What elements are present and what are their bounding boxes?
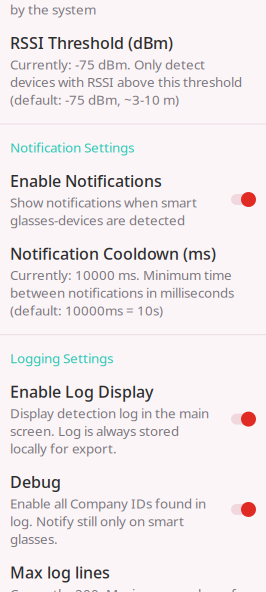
button[interactable]: Debug (0, 464, 266, 555)
button[interactable]: Max log lines (0, 555, 266, 592)
staticText: RSSI Threshold (dBm) (10, 32, 173, 53)
staticText: Show notifications when smart glasses-de… (10, 193, 197, 229)
button[interactable]: Enable Log Display (0, 374, 266, 464)
staticText: Notification Cooldown (ms) (10, 243, 216, 264)
button[interactable]: RSSI Threshold (dBm) (0, 25, 266, 115)
staticText: Run scanning as a foreground service to … (10, 0, 213, 18)
staticText: Enable Log Display (10, 381, 153, 402)
button[interactable]: Enable Notifications (0, 163, 266, 236)
staticText: Display detection log in the main screen… (10, 404, 209, 457)
button[interactable]: Notification Cooldown (ms) (0, 236, 266, 326)
staticText: Max log lines (10, 562, 110, 583)
staticText: Enable Notifications (10, 170, 162, 191)
staticText: Debug (10, 471, 61, 492)
staticText: Notification Settings (10, 138, 134, 156)
button[interactable]: Enable Foreground Service (0, 0, 266, 25)
staticText: Enable all Company IDs found in log. Not… (10, 494, 206, 548)
staticText: Currently: 10000 ms. Minimum time betwee… (10, 266, 234, 319)
staticText: Logging Settings (10, 349, 113, 367)
staticText: Currently: 200. Maximum number of lines … (10, 585, 236, 592)
staticText: Currently: -75 dBm. Only detect devices … (10, 55, 242, 108)
